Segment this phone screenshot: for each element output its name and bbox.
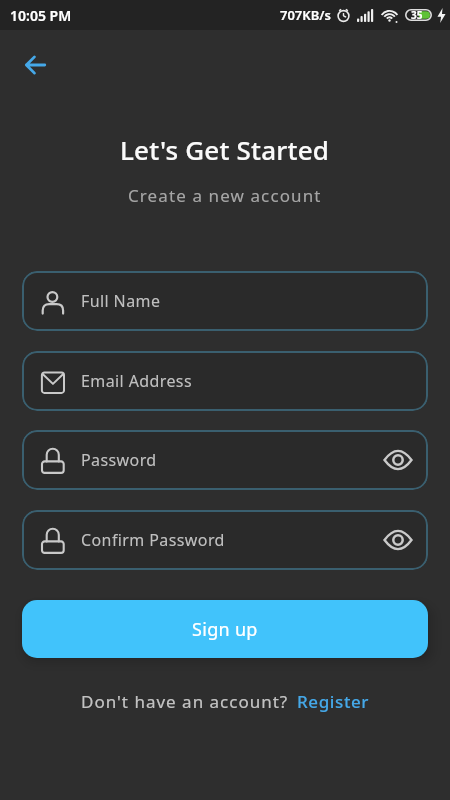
staticText: Register: [297, 690, 370, 713]
staticText: Create a new account: [128, 184, 322, 207]
button[interactable]: Sign up: [22, 600, 428, 658]
button[interactable]: Full Name: [22, 271, 428, 331]
button[interactable]: Register: [297, 690, 370, 713]
staticText: Password: [81, 449, 157, 471]
button[interactable]: Email Address: [22, 351, 428, 411]
staticText: 35: [411, 8, 423, 22]
button[interactable]: Confirm Password: [22, 510, 428, 570]
staticText: Email Address: [81, 370, 192, 392]
staticText: Sign up: [192, 617, 258, 642]
button[interactable]: [16, 46, 54, 84]
button[interactable]: [378, 522, 418, 558]
button[interactable]: [378, 442, 418, 478]
staticText: 707KB/s: [280, 6, 331, 24]
staticText: 10:05 PM: [10, 6, 72, 25]
staticText: Full Name: [81, 290, 161, 312]
staticText: Confirm Password: [81, 529, 225, 551]
staticText: Let's Get Started: [120, 132, 330, 167]
staticText: Don't have an account?: [81, 690, 289, 713]
button[interactable]: Password: [22, 430, 428, 490]
